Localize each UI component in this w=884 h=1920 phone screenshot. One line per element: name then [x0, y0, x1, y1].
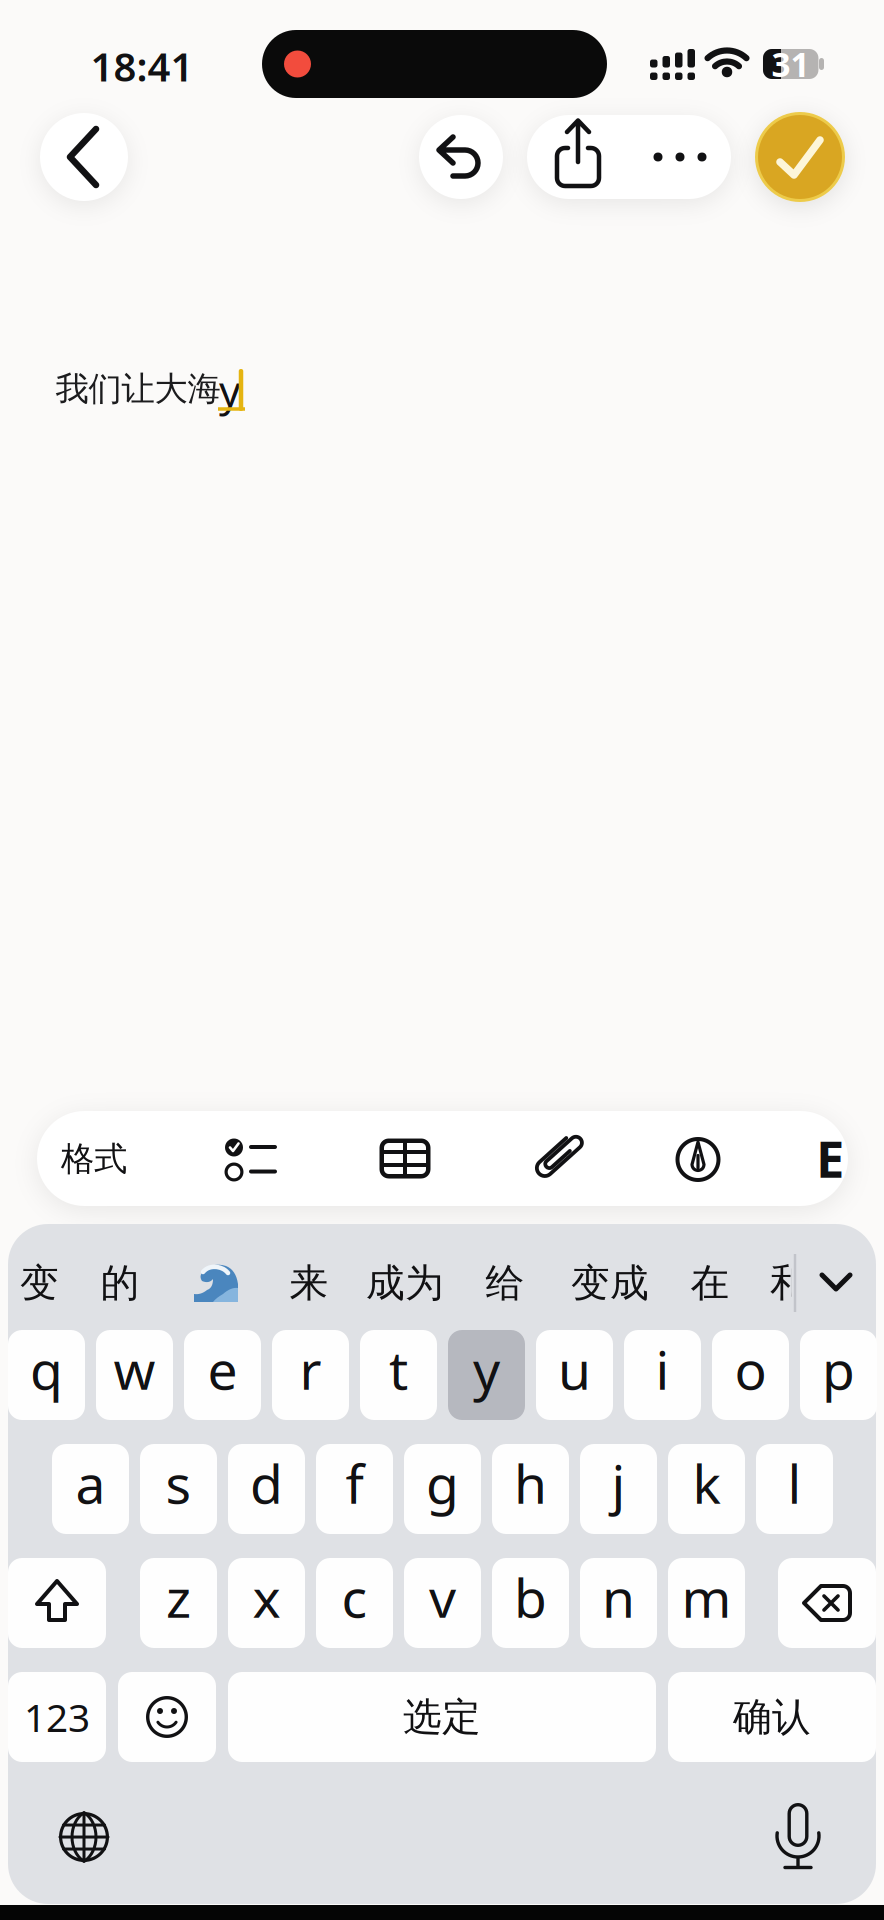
staticText: 成为	[366, 1259, 444, 1307]
button[interactable]: k	[668, 1444, 745, 1534]
button[interactable]: 的	[100, 1250, 139, 1316]
button[interactable]: h	[492, 1444, 569, 1534]
staticText: w	[113, 1334, 155, 1404]
button[interactable]: w	[96, 1330, 173, 1420]
staticText: y	[473, 1334, 500, 1404]
button[interactable]: 选定	[228, 1672, 656, 1762]
staticText: c	[341, 1562, 367, 1632]
button[interactable]: 给	[485, 1250, 524, 1316]
button[interactable]: More tools	[808, 1110, 852, 1205]
staticText: a	[75, 1448, 105, 1518]
staticText: n	[602, 1562, 635, 1632]
button[interactable]: Markup	[662, 1111, 734, 1206]
button[interactable]: s	[140, 1444, 217, 1534]
button[interactable]: 变成	[571, 1250, 649, 1316]
button[interactable]: d	[228, 1444, 305, 1534]
button[interactable]: Checklist	[216, 1111, 288, 1206]
button[interactable]: Back	[40, 113, 128, 201]
staticText: j	[611, 1448, 625, 1518]
button[interactable]: Delete	[778, 1558, 876, 1648]
button[interactable]: Undo	[419, 115, 503, 199]
button[interactable]: u	[536, 1330, 613, 1420]
button[interactable]: b	[492, 1558, 569, 1648]
staticText: i	[655, 1334, 669, 1404]
button[interactable]: p	[800, 1330, 877, 1420]
button[interactable]: f	[316, 1444, 393, 1534]
button[interactable]: 成为	[366, 1250, 444, 1316]
button[interactable]: j	[580, 1444, 657, 1534]
button[interactable]: Share	[527, 115, 629, 199]
button[interactable]: Emoji	[118, 1672, 216, 1762]
staticText: 确认	[733, 1693, 811, 1741]
staticText: f	[345, 1448, 363, 1518]
button[interactable]: 来	[289, 1250, 328, 1316]
staticText: E	[816, 1124, 844, 1192]
staticText: 的	[100, 1259, 139, 1307]
staticText: g	[426, 1448, 459, 1518]
staticText: r	[299, 1334, 321, 1404]
button[interactable]: y	[448, 1330, 525, 1420]
staticText: e	[207, 1334, 237, 1404]
staticText: 31	[771, 42, 809, 86]
button[interactable]: g	[404, 1444, 481, 1534]
button[interactable]: t	[360, 1330, 437, 1420]
staticText: 18:41	[90, 39, 193, 92]
staticText: 给	[485, 1259, 524, 1307]
button[interactable]: 确认	[668, 1672, 876, 1762]
button[interactable]: m	[668, 1558, 745, 1648]
button[interactable]: More	[629, 115, 731, 199]
staticText: u	[558, 1334, 591, 1404]
staticText: k	[692, 1448, 720, 1518]
staticText: o	[734, 1334, 766, 1404]
staticText: 格式	[61, 1138, 127, 1179]
staticText: b	[514, 1562, 547, 1632]
staticText: p	[822, 1334, 855, 1404]
button[interactable]: q	[8, 1330, 85, 1420]
button[interactable]: Dictate	[758, 1798, 838, 1878]
button[interactable]: 123	[8, 1672, 106, 1762]
button[interactable]: x	[228, 1558, 305, 1648]
button[interactable]: 和	[770, 1255, 792, 1311]
button[interactable]: e	[184, 1330, 261, 1420]
button[interactable]: Attach	[518, 1110, 594, 1205]
staticText: z	[166, 1562, 191, 1632]
staticText: t	[389, 1334, 408, 1404]
staticText: h	[514, 1448, 547, 1518]
button[interactable]: Collapse candidates	[805, 1249, 867, 1315]
button[interactable]: a	[52, 1444, 129, 1534]
button[interactable]: n	[580, 1558, 657, 1648]
button[interactable]: v	[404, 1558, 481, 1648]
staticText: x	[252, 1562, 280, 1632]
button[interactable]: 在	[690, 1250, 729, 1316]
staticText: l	[787, 1448, 801, 1518]
button[interactable]: l	[756, 1444, 833, 1534]
staticText: v	[429, 1562, 456, 1632]
button[interactable]: 变	[20, 1250, 59, 1316]
button[interactable]: 格式	[34, 1111, 154, 1206]
staticText: 在	[690, 1259, 729, 1307]
button[interactable]: i	[624, 1330, 701, 1420]
staticText: y	[219, 362, 241, 418]
staticText: 和	[770, 1259, 809, 1307]
staticText: d	[250, 1448, 283, 1518]
button[interactable]: 🌊	[193, 1262, 239, 1304]
button[interactable]: c	[316, 1558, 393, 1648]
staticText: 变	[20, 1259, 59, 1307]
button[interactable]: Table	[369, 1111, 441, 1206]
staticText: m	[681, 1562, 731, 1632]
staticText: s	[165, 1448, 191, 1518]
button[interactable]: Done	[755, 112, 845, 202]
staticText: 选定	[403, 1693, 481, 1741]
button[interactable]: r	[272, 1330, 349, 1420]
button[interactable]: Shift	[8, 1558, 106, 1648]
button[interactable]: Next keyboard	[44, 1797, 124, 1877]
staticText: 变成	[571, 1259, 649, 1307]
staticText: 来	[289, 1259, 328, 1307]
staticText: 我们让大海	[55, 368, 220, 409]
button[interactable]: o	[712, 1330, 789, 1420]
staticText: 123	[24, 1691, 90, 1743]
staticText: q	[30, 1334, 63, 1404]
button[interactable]: z	[140, 1558, 217, 1648]
